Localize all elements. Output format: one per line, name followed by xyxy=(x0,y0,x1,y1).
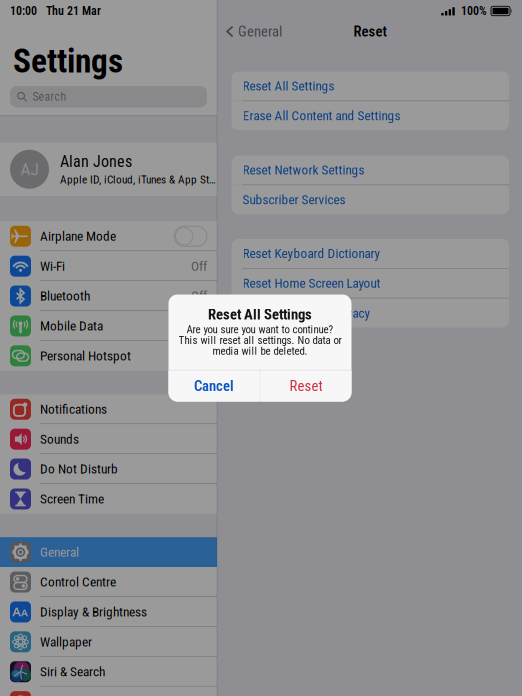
button[interactable]: Reset Home Screen Layout xyxy=(231,269,509,298)
button[interactable]: Wi-Fi xyxy=(0,251,217,281)
button[interactable]: Screen Time xyxy=(0,484,217,514)
staticText: Off xyxy=(191,258,207,274)
staticText: Apple ID, iCloud, iTunes & App St… xyxy=(60,173,216,186)
button[interactable]: Reset All Settings xyxy=(231,71,509,100)
staticText: Airplane Mode xyxy=(40,228,116,244)
staticText: Settings xyxy=(13,41,123,81)
staticText: This will reset all settings. No data or xyxy=(178,334,341,347)
button[interactable]: Search xyxy=(10,86,207,107)
staticText: Search xyxy=(32,90,66,104)
staticText: Reset Home Screen Layout xyxy=(242,275,380,291)
button[interactable]: Wallpaper xyxy=(0,627,217,657)
staticText: Alan Jones xyxy=(60,152,132,171)
staticText: Thu 21 Mar xyxy=(46,4,101,18)
button[interactable]: Reset xyxy=(260,371,351,401)
staticText: media will be deleted. xyxy=(212,344,307,357)
button[interactable]: Touch ID & Passcode xyxy=(0,687,217,696)
staticText: Mobile Data xyxy=(40,318,103,334)
staticText: AJ xyxy=(20,159,38,179)
button[interactable]: AJ xyxy=(0,142,217,196)
staticText: Reset All Settings xyxy=(208,306,312,323)
staticText: Personal Hotspot xyxy=(40,348,131,364)
button[interactable]: Reset Network Settings xyxy=(231,155,509,184)
staticText: Wi-Fi xyxy=(40,258,65,274)
button[interactable]: Airplane Mode xyxy=(0,221,217,251)
button[interactable]: Siri & Search xyxy=(0,657,217,687)
staticText: Erase All Content and Settings xyxy=(242,108,400,124)
button[interactable]: Do Not Disturb xyxy=(0,454,217,484)
staticText: Screen Time xyxy=(40,491,104,507)
staticText: Notifications xyxy=(40,401,107,417)
staticText: 10:00 xyxy=(10,4,37,18)
button[interactable]: Mobile Data xyxy=(0,311,217,341)
staticText: 100% xyxy=(461,4,487,18)
button[interactable]: Notifications xyxy=(0,394,217,424)
button[interactable]: Cancel xyxy=(168,371,260,401)
button[interactable]: Control Centre xyxy=(0,567,217,597)
staticText: Are you sure you want to continue? xyxy=(186,323,333,336)
staticText: Cancel xyxy=(194,377,234,395)
staticText: Reset Keyboard Dictionary xyxy=(242,246,380,261)
button[interactable]: General xyxy=(226,23,286,40)
button[interactable]: Reset Keyboard Dictionary xyxy=(231,239,509,268)
staticText: Reset Network Settings xyxy=(242,162,364,178)
staticText: General xyxy=(40,544,79,560)
staticText: Bluetooth xyxy=(40,288,90,304)
button[interactable]: General xyxy=(0,537,217,567)
staticText: Reset All Settings xyxy=(242,78,334,94)
staticText: Do Not Disturb xyxy=(40,461,118,477)
button[interactable]: Erase All Content and Settings xyxy=(231,101,509,130)
staticText: Reset Location & Privacy xyxy=(242,305,370,321)
button[interactable]: Bluetooth xyxy=(0,281,217,311)
staticText: Siri & Search xyxy=(40,664,105,679)
staticText: Sounds xyxy=(40,431,79,447)
staticText: Reset xyxy=(353,23,386,40)
button[interactable]: Subscriber Services xyxy=(231,185,509,214)
button[interactable]: Reset Location & Privacy xyxy=(231,299,509,328)
staticText: Subscriber Services xyxy=(242,192,345,208)
button[interactable]: Display & Brightness xyxy=(0,597,217,627)
button[interactable]: Sounds xyxy=(0,424,217,454)
staticText: Reset xyxy=(289,377,322,395)
staticText: Off xyxy=(191,288,207,304)
staticText: Control Centre xyxy=(40,574,116,590)
staticText: Wallpaper xyxy=(40,634,92,650)
staticText: General xyxy=(238,23,282,40)
staticText: Display & Brightness xyxy=(40,604,147,620)
button[interactable]: Personal Hotspot xyxy=(0,341,217,371)
